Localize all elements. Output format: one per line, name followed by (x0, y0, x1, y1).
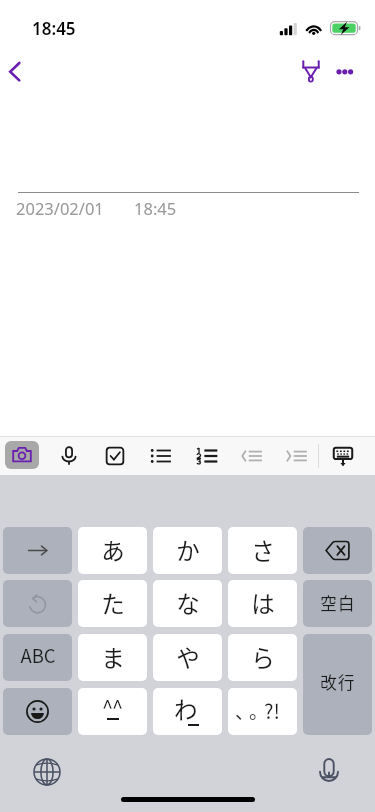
button[interactable]: Outdent (235, 439, 269, 473)
button[interactable]: Indent (280, 439, 314, 473)
button[interactable]: わ (153, 688, 222, 735)
button[interactable]: た (78, 580, 147, 627)
staticText: 改行 (320, 670, 356, 694)
staticText: 。 (249, 697, 269, 725)
staticText: ^^ (102, 692, 123, 721)
button[interactable]: Microphone (52, 439, 86, 473)
button[interactable]: Undo (3, 580, 72, 627)
button[interactable]: 改行 (303, 634, 372, 735)
button[interactable]: さ (228, 527, 297, 574)
staticText: た (101, 586, 125, 620)
staticText: は (251, 586, 275, 620)
button[interactable]: な (153, 580, 222, 627)
staticText: 、 (235, 697, 255, 725)
staticText: や (176, 640, 200, 674)
button[interactable]: Next keyboard (30, 755, 64, 789)
button[interactable]: 、 (228, 688, 297, 735)
staticText: 18:45 (134, 197, 177, 219)
staticText: ら (251, 640, 275, 674)
button[interactable]: は (228, 580, 297, 627)
button[interactable]: Bullet list (144, 439, 178, 473)
button[interactable]: か (153, 527, 222, 574)
staticText: ABC (20, 642, 56, 669)
button[interactable]: Delete (303, 527, 372, 574)
button[interactable]: ^^ (78, 688, 147, 735)
button[interactable]: Camera (5, 441, 39, 469)
button[interactable]: Highlighter (294, 54, 326, 86)
staticText: な (176, 586, 200, 620)
staticText: ?! (264, 696, 280, 725)
staticText: わ (174, 692, 198, 726)
button[interactable]: Hide keyboard (326, 439, 360, 473)
button[interactable]: ABC (3, 634, 72, 681)
staticText: 2023/02/01 (16, 197, 104, 219)
button[interactable]: Emoji (3, 688, 72, 735)
button[interactable]: Numbered list (190, 439, 224, 473)
button[interactable]: ら (228, 634, 297, 681)
button[interactable]: や (153, 634, 222, 681)
button[interactable]: Checkbox (98, 439, 132, 473)
button[interactable]: 空白 (303, 580, 372, 627)
button[interactable]: Back (0, 54, 32, 86)
staticText: 18:45 (32, 17, 76, 40)
staticText: あ (101, 533, 125, 567)
staticText: 空白 (320, 591, 356, 615)
staticText: か (176, 533, 200, 567)
button[interactable]: Dictation (312, 755, 346, 789)
staticText: ま (101, 640, 125, 674)
staticText: さ (251, 533, 275, 567)
button[interactable]: More options (329, 54, 361, 86)
button[interactable]: ま (78, 634, 147, 681)
button[interactable]: Next (3, 527, 72, 574)
button[interactable]: あ (78, 527, 147, 574)
